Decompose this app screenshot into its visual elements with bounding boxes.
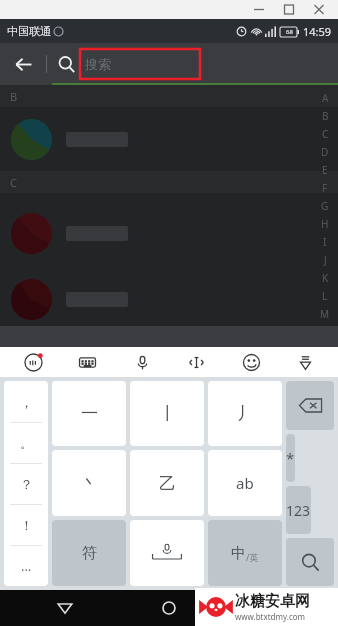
staticText: 中 bbox=[231, 544, 246, 563]
button[interactable]: I bbox=[319, 233, 331, 251]
staticText: G bbox=[321, 199, 329, 213]
button[interactable]: ！ bbox=[4, 505, 48, 545]
staticText: D bbox=[321, 145, 329, 159]
button[interactable] bbox=[0, 193, 338, 273]
button[interactable]: Recents bbox=[234, 590, 314, 626]
button[interactable]: G bbox=[319, 197, 331, 215]
staticText: 丿 bbox=[237, 403, 254, 424]
button[interactable]: Home bbox=[129, 590, 209, 626]
button[interactable]: 丨 bbox=[130, 381, 204, 446]
button[interactable]: 搜索 bbox=[85, 43, 338, 85]
button[interactable]: K bbox=[319, 269, 331, 287]
staticText: 丨 bbox=[159, 403, 176, 424]
staticText: C bbox=[10, 175, 17, 190]
staticText: 丶 bbox=[81, 473, 98, 494]
button[interactable]: ？ bbox=[4, 464, 48, 504]
staticText: ， bbox=[20, 394, 33, 410]
button[interactable]: C bbox=[319, 125, 331, 143]
staticText: ！ bbox=[20, 517, 33, 533]
button[interactable]: Emoji bbox=[229, 347, 273, 377]
staticText: E bbox=[322, 163, 328, 177]
staticText: L bbox=[322, 289, 328, 303]
staticText: 14:59 bbox=[303, 24, 332, 39]
button[interactable]: J bbox=[319, 251, 331, 269]
button[interactable]: Input method logo bbox=[11, 347, 55, 377]
staticText: 123 bbox=[286, 501, 311, 520]
staticText: K bbox=[322, 271, 329, 285]
button[interactable]: H bbox=[319, 215, 331, 233]
staticText: 中国联通 bbox=[7, 24, 51, 38]
button[interactable]: A bbox=[319, 89, 331, 107]
button[interactable]: 123 bbox=[286, 486, 311, 534]
staticText: C bbox=[322, 127, 329, 141]
button[interactable]: 乙 bbox=[130, 450, 204, 516]
staticText: 乙 bbox=[159, 473, 176, 494]
button[interactable]: Collapse keyboard bbox=[283, 347, 327, 377]
button[interactable]: Back bbox=[25, 590, 105, 626]
staticText: I bbox=[323, 235, 327, 249]
button[interactable]: Search bbox=[47, 43, 85, 85]
button[interactable]: ， bbox=[4, 381, 48, 422]
button[interactable]: M bbox=[319, 305, 331, 323]
staticText: 冰糖安卓网 bbox=[235, 592, 310, 611]
button[interactable] bbox=[0, 107, 338, 171]
button[interactable]: 。 bbox=[4, 423, 48, 463]
button[interactable]: close bbox=[304, 0, 334, 19]
staticText: B bbox=[322, 109, 329, 123]
button[interactable]: L bbox=[319, 287, 331, 305]
staticText: F bbox=[322, 181, 328, 195]
button[interactable]: B bbox=[319, 107, 331, 125]
button[interactable]: 丿 bbox=[208, 381, 282, 446]
staticText: H bbox=[321, 217, 329, 231]
button[interactable]: Search bbox=[286, 538, 334, 586]
button[interactable]: E bbox=[319, 161, 331, 179]
staticText: * bbox=[286, 448, 295, 468]
staticText: 一 bbox=[81, 403, 98, 424]
staticText: www.btxtdmy.com bbox=[235, 611, 306, 622]
button[interactable]: maximize bbox=[274, 0, 304, 19]
staticText: … bbox=[21, 557, 32, 575]
button[interactable]: Space bbox=[130, 520, 204, 586]
button[interactable]: … bbox=[4, 546, 48, 586]
staticText: ？ bbox=[20, 476, 33, 492]
button[interactable]: 丶 bbox=[52, 450, 126, 516]
button[interactable]: D bbox=[319, 143, 331, 161]
staticText: 68 bbox=[286, 28, 293, 36]
button[interactable]: 符 bbox=[52, 520, 126, 586]
button[interactable]: Voice input bbox=[120, 347, 164, 377]
staticText: 符 bbox=[82, 544, 97, 563]
button[interactable]: Back bbox=[0, 43, 46, 85]
button[interactable]: 中 bbox=[208, 520, 282, 586]
staticText: 搜索 bbox=[85, 56, 111, 72]
staticText: M bbox=[320, 307, 330, 321]
button[interactable]: F bbox=[319, 179, 331, 197]
button[interactable]: Cursor move bbox=[174, 347, 218, 377]
button[interactable]: 一 bbox=[52, 381, 126, 446]
button[interactable]: minimize bbox=[244, 0, 274, 19]
button[interactable]: Keyboard bbox=[65, 347, 109, 377]
button[interactable]: ab bbox=[208, 450, 282, 516]
button[interactable] bbox=[0, 273, 338, 326]
staticText: 。 bbox=[20, 435, 33, 451]
staticText: A bbox=[322, 91, 329, 105]
staticText: /英 bbox=[246, 551, 259, 563]
staticText: ab bbox=[236, 473, 254, 493]
button[interactable]: * bbox=[286, 434, 295, 482]
button[interactable]: Backspace bbox=[286, 381, 334, 430]
staticText: B bbox=[10, 89, 18, 104]
staticText: J bbox=[324, 253, 327, 267]
